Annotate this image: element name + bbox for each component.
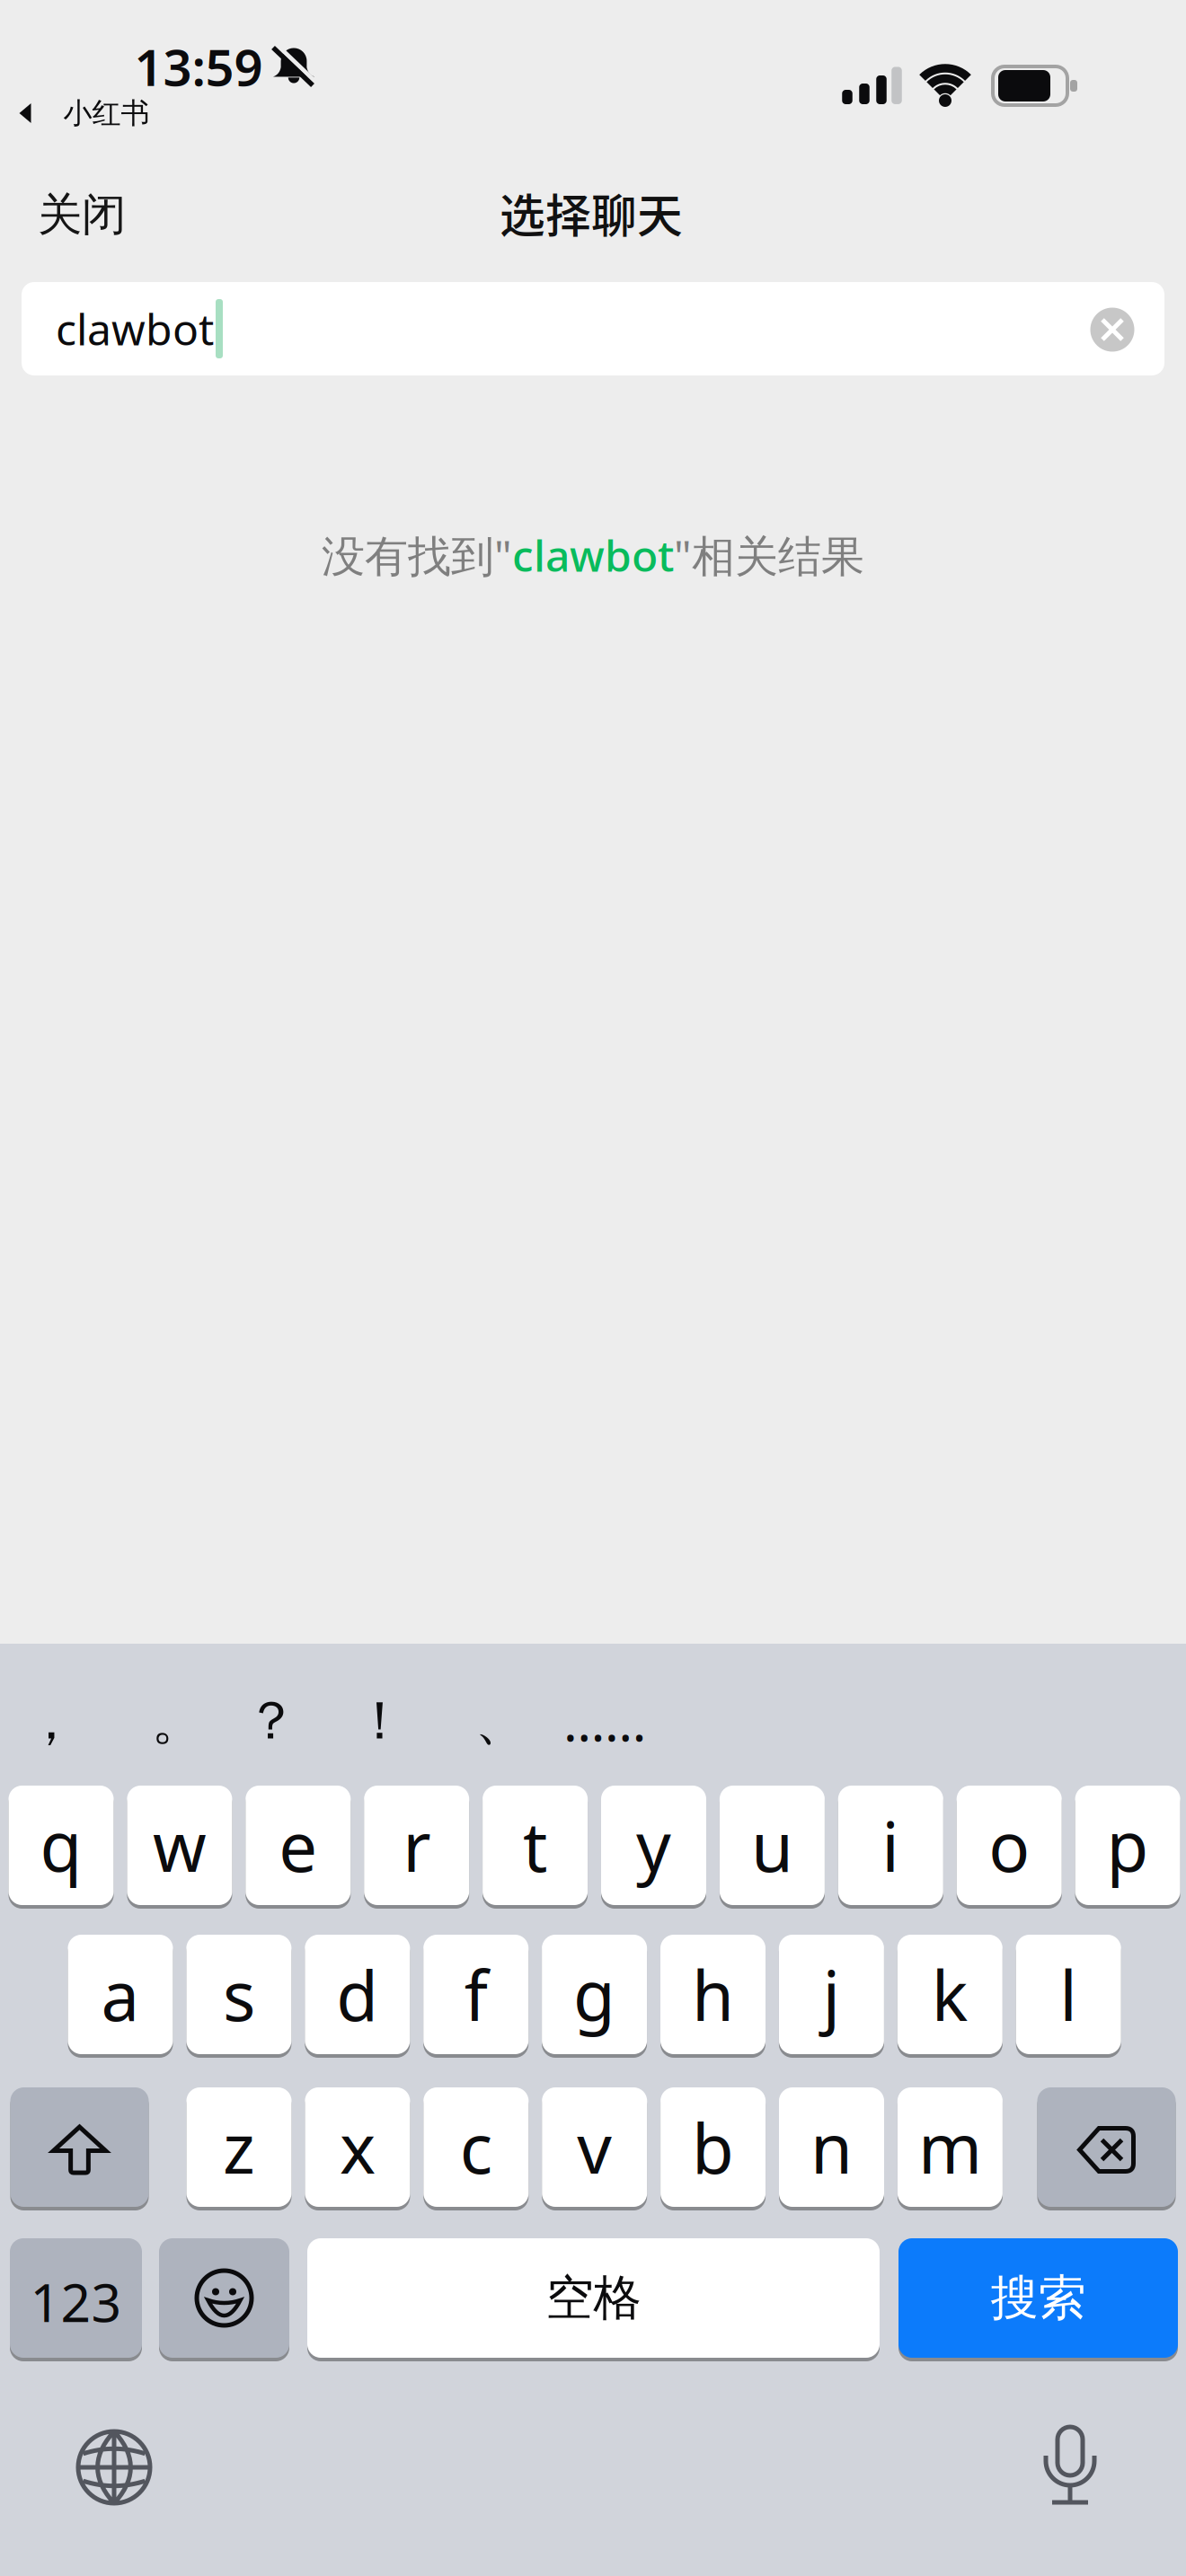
staticText: o (989, 1800, 1030, 1891)
staticText: d (336, 1949, 379, 2040)
button[interactable]: w (127, 1786, 232, 1905)
button[interactable]: p (1075, 1786, 1180, 1905)
button[interactable]: ！ (354, 1689, 407, 1753)
button[interactable]: 清除 (1090, 308, 1134, 352)
button[interactable]: ， (25, 1689, 78, 1753)
button[interactable]: o (957, 1786, 1062, 1905)
staticText: 空格 (546, 2269, 641, 2327)
button[interactable]: …… (563, 1686, 646, 1756)
staticText: s (223, 1949, 255, 2040)
staticText: b (692, 2102, 734, 2192)
staticText: m (918, 2102, 982, 2192)
staticText: 13:59 (134, 33, 263, 100)
button[interactable]: 切换键盘 (78, 2431, 150, 2503)
button[interactable]: 删除 (1037, 2087, 1176, 2207)
staticText: g (573, 1949, 616, 2040)
staticText: r (403, 1800, 431, 1891)
button[interactable]: b (660, 2087, 766, 2207)
staticText: a (101, 1949, 140, 2040)
button[interactable]: l (1016, 1935, 1121, 2054)
button[interactable]: z (186, 2087, 292, 2207)
staticText: y (636, 1800, 671, 1891)
button[interactable]: d (305, 1935, 410, 2054)
staticText: t (523, 1800, 547, 1891)
button[interactable]: n (779, 2087, 884, 2207)
staticText: h (692, 1949, 734, 2040)
staticText: 选择聊天 (500, 180, 683, 246)
staticText: 。 (151, 1689, 204, 1753)
staticText: z (223, 2102, 255, 2192)
button[interactable]: x (305, 2087, 410, 2207)
staticText: "相关结果 (674, 526, 864, 584)
button[interactable]: y (601, 1786, 706, 1905)
staticText: w (153, 1800, 207, 1891)
button[interactable]: 、 (475, 1689, 528, 1753)
button[interactable]: Shift (10, 2087, 149, 2207)
staticText: i (882, 1800, 900, 1891)
staticText: u (751, 1800, 793, 1891)
staticText: e (279, 1800, 317, 1891)
button[interactable]: 搜索 (898, 2238, 1178, 2358)
staticText: ！ (354, 1689, 407, 1753)
staticText: 、 (475, 1689, 528, 1753)
staticText: v (577, 2102, 612, 2192)
button[interactable]: h (660, 1935, 766, 2054)
button[interactable]: t (483, 1786, 588, 1905)
button[interactable]: 表情 (159, 2238, 289, 2358)
button[interactable]: 关闭 (38, 187, 126, 242)
button[interactable]: 返回小红书 (19, 95, 150, 131)
staticText: q (40, 1800, 82, 1891)
staticText: ？ (245, 1689, 298, 1753)
button[interactable]: e (246, 1786, 351, 1905)
button[interactable]: f (423, 1935, 528, 2054)
button[interactable]: 听写 (1044, 2427, 1096, 2504)
button[interactable]: v (542, 2087, 647, 2207)
button[interactable]: k (897, 1935, 1003, 2054)
button[interactable]: 123 (10, 2238, 142, 2358)
staticText: f (464, 1949, 488, 2040)
button[interactable]: i (838, 1786, 943, 1905)
staticText: 关闭 (38, 187, 126, 242)
staticText: clawbot (512, 526, 674, 584)
staticText: 搜索 (991, 2269, 1086, 2327)
staticText: …… (563, 1686, 646, 1756)
staticText: clawbot (56, 300, 214, 357)
staticText: 小红书 (63, 95, 150, 131)
staticText: ， (25, 1689, 78, 1753)
button[interactable]: 空格 (307, 2238, 880, 2358)
staticText: x (340, 2102, 375, 2192)
staticText: p (1107, 1800, 1149, 1891)
button[interactable]: m (897, 2087, 1003, 2207)
staticText: k (932, 1949, 968, 2040)
staticText: l (1059, 1949, 1077, 2040)
button[interactable]: 。 (151, 1689, 204, 1753)
button[interactable]: ？ (245, 1689, 298, 1753)
staticText: 123 (30, 2267, 122, 2337)
button[interactable]: q (9, 1786, 114, 1905)
button[interactable]: j (779, 1935, 884, 2054)
button[interactable]: r (364, 1786, 469, 1905)
staticText: c (460, 2102, 492, 2192)
button[interactable]: u (720, 1786, 825, 1905)
staticText: j (822, 1949, 840, 2040)
button[interactable]: s (186, 1935, 291, 2054)
staticText: n (810, 2102, 853, 2192)
button[interactable]: a (68, 1935, 173, 2054)
button[interactable]: g (542, 1935, 647, 2054)
button[interactable]: c (423, 2087, 529, 2207)
staticText: 没有找到" (322, 526, 512, 584)
